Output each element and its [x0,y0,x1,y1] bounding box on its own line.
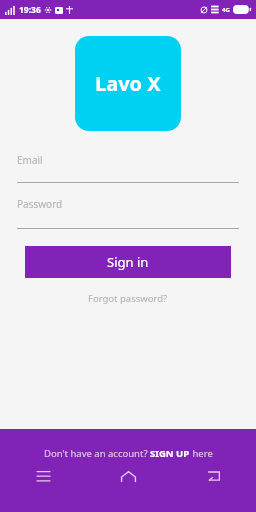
staticText: SIGN UP [150,447,190,460]
button[interactable]: Email [0,153,256,183]
staticText: 19:36 [19,4,41,16]
staticText: here [190,447,213,460]
staticText: Email [17,153,43,167]
button[interactable]: Sign in [25,246,231,278]
button[interactable]: Password [0,197,256,229]
button[interactable]: Don't have an account? [0,447,256,460]
button[interactable]: Back [171,461,256,491]
staticText: Don't have an account? [44,447,150,460]
button[interactable]: Home [86,461,171,491]
button[interactable]: Forgot password? [88,292,168,305]
button[interactable]: Lavo X [75,36,181,131]
staticText: 4G [222,6,230,14]
staticText: Password [17,197,63,211]
staticText: Sign in [107,253,149,271]
staticText: Forgot password? [88,292,168,305]
staticText: Lavo X [95,70,161,97]
button[interactable]: Recent apps [0,461,86,491]
